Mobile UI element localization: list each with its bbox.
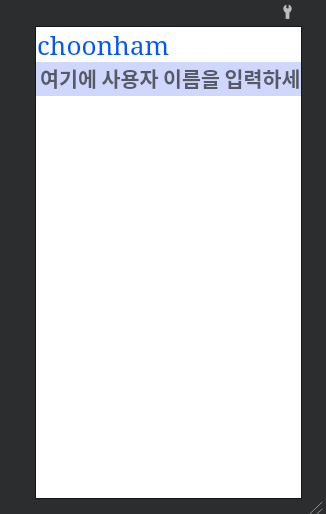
- button[interactable]: Developer tools: [282, 3, 293, 21]
- staticText: choonham: [37, 27, 170, 62]
- staticText: 여기에 사용자 이름을 입력하세요: [40, 63, 301, 93]
